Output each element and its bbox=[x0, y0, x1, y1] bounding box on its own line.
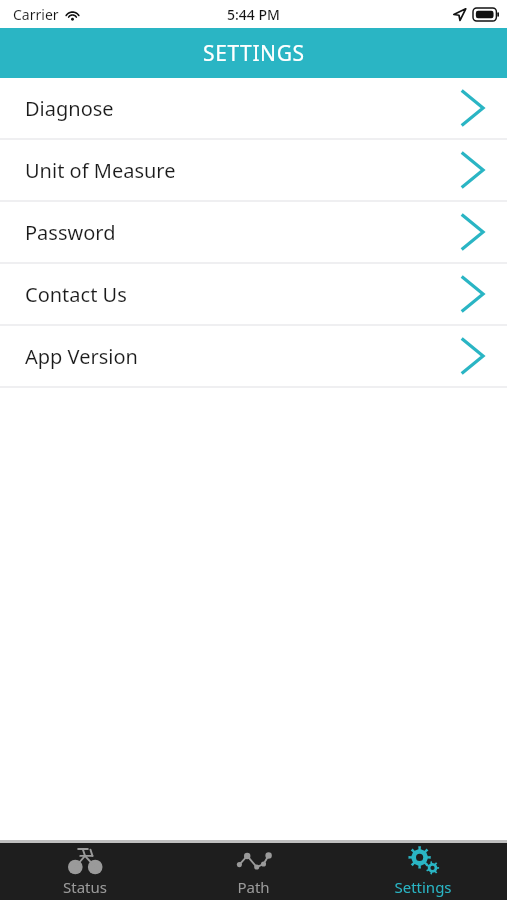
button[interactable]: App Version bbox=[0, 326, 507, 386]
staticText: Status bbox=[63, 877, 107, 897]
staticText: App Version bbox=[25, 343, 138, 370]
staticText: Settings bbox=[394, 877, 452, 897]
staticText: Diagnose bbox=[25, 95, 114, 122]
button[interactable]: Diagnose bbox=[0, 78, 507, 138]
staticText: Unit of Measure bbox=[25, 157, 176, 184]
button[interactable]: Unit of Measure bbox=[0, 140, 507, 200]
button[interactable]: Status bbox=[0, 843, 169, 900]
staticText: Contact Us bbox=[25, 281, 127, 308]
button[interactable]: Path bbox=[169, 843, 338, 900]
staticText: 5:44 PM bbox=[227, 5, 280, 24]
staticText: Path bbox=[237, 877, 270, 897]
staticText: Carrier bbox=[13, 5, 59, 24]
button[interactable]: Password bbox=[0, 202, 507, 262]
staticText: Password bbox=[25, 219, 116, 246]
button[interactable]: Contact Us bbox=[0, 264, 507, 324]
button[interactable]: Settings bbox=[338, 843, 507, 900]
staticText: SETTINGS bbox=[203, 39, 305, 68]
